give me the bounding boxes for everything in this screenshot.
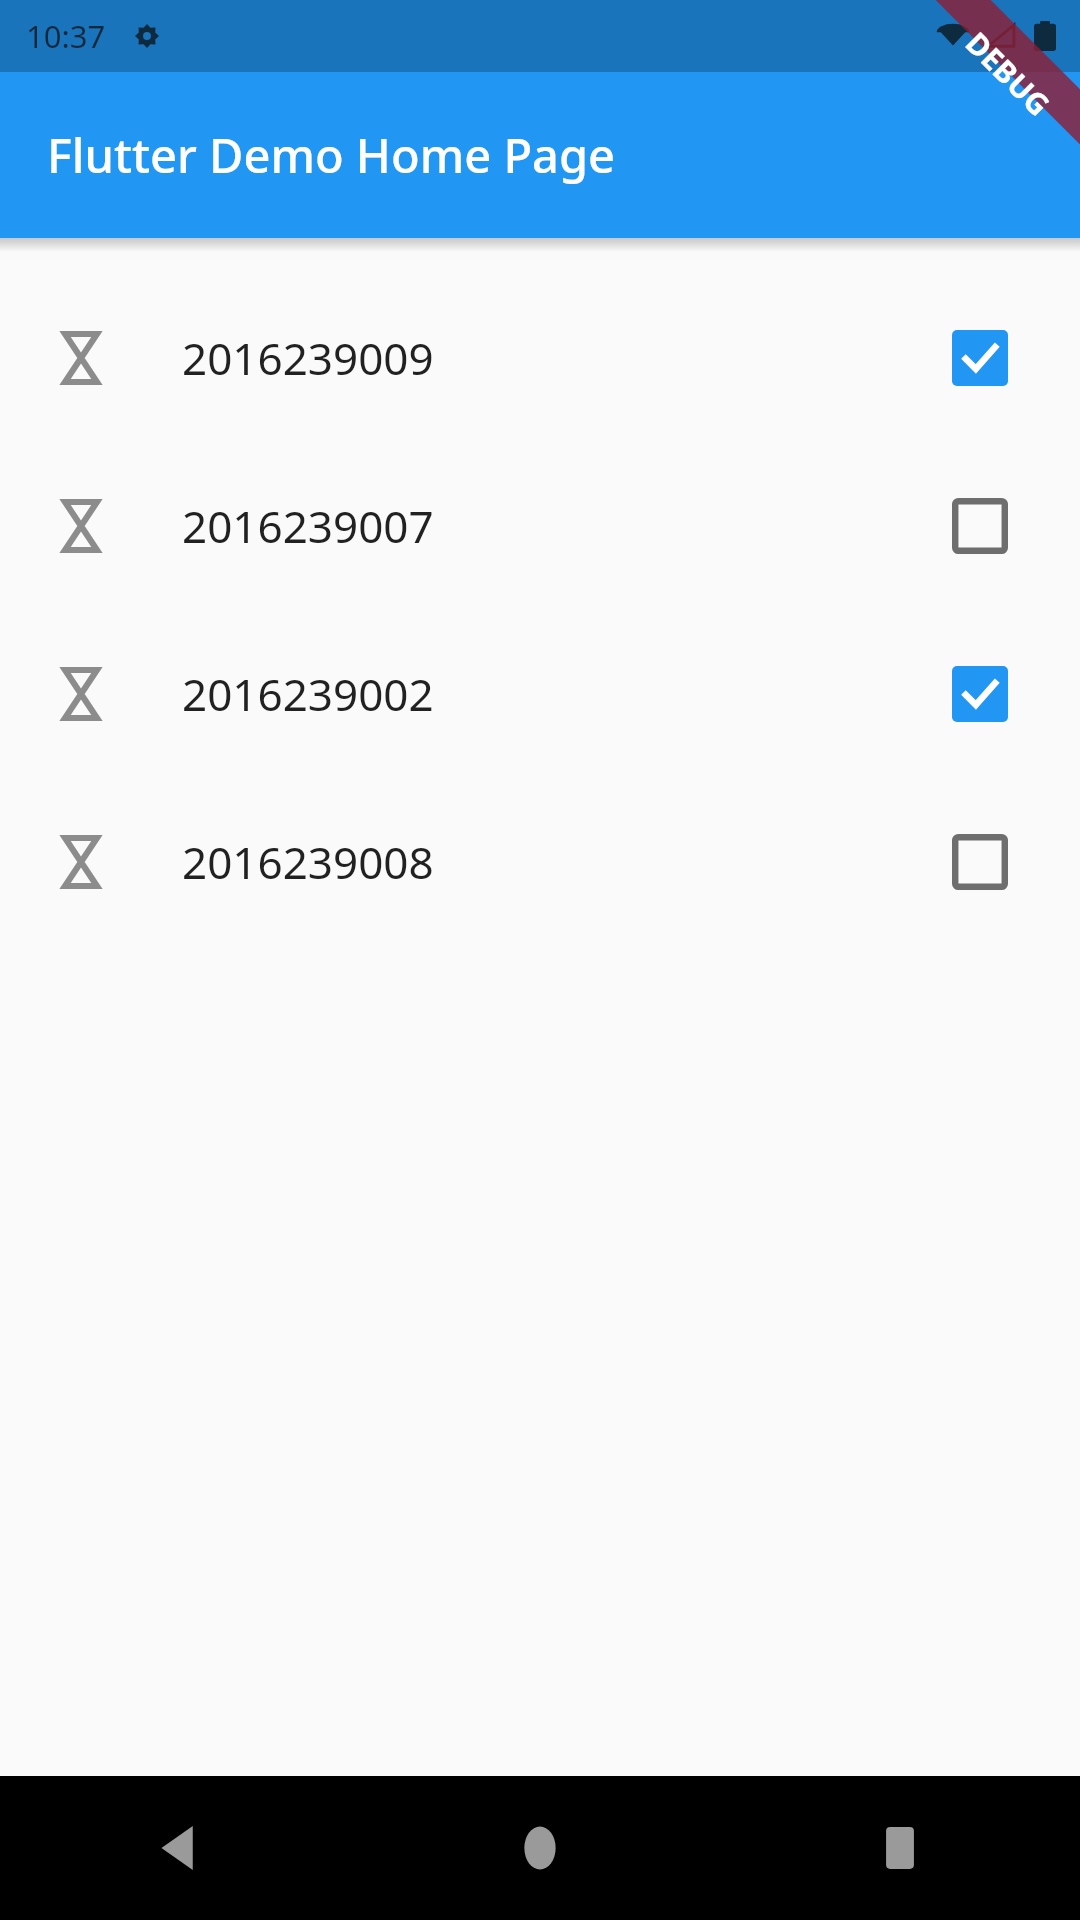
button[interactable]: Unchecked bbox=[942, 488, 1018, 564]
staticText: 2016239002 bbox=[182, 664, 434, 724]
button[interactable]: 2016239008 bbox=[0, 778, 1080, 946]
staticText: 2016239009 bbox=[182, 328, 434, 388]
button[interactable]: Unchecked bbox=[942, 824, 1018, 900]
button[interactable]: 2016239009 bbox=[0, 274, 1080, 442]
button[interactable]: Checked bbox=[942, 656, 1018, 732]
staticText: Flutter Demo Home Page bbox=[47, 123, 616, 187]
button[interactable]: 2016239002 bbox=[0, 610, 1080, 778]
button[interactable]: 2016239007 bbox=[0, 442, 1080, 610]
button[interactable]: Recents bbox=[720, 1776, 1080, 1920]
staticText: 2016239008 bbox=[182, 832, 434, 892]
staticText: 10:37 bbox=[26, 15, 106, 57]
button[interactable]: Back bbox=[0, 1776, 360, 1920]
button[interactable]: Checked bbox=[942, 320, 1018, 396]
staticText: 2016239007 bbox=[182, 496, 434, 556]
staticText: DEBUG bbox=[957, 22, 1059, 125]
button[interactable]: Home bbox=[360, 1776, 720, 1920]
